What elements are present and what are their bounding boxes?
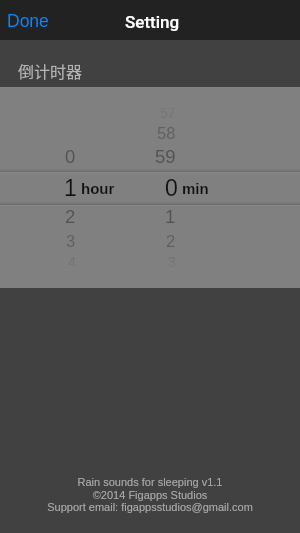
staticText: 0 xyxy=(165,175,178,201)
staticText: 1 xyxy=(165,206,176,227)
staticText: 59 xyxy=(155,146,176,167)
staticText: hour xyxy=(81,180,115,197)
staticText: Setting xyxy=(125,12,180,32)
staticText: 58 xyxy=(157,124,176,142)
staticText: 3 xyxy=(168,254,176,270)
staticText: 2 xyxy=(65,206,76,227)
staticText: ©2014 Figapps Studios xyxy=(0,489,300,501)
staticText: 3 xyxy=(66,232,76,250)
staticText: 4 xyxy=(68,254,76,270)
staticText: 2 xyxy=(166,232,176,250)
staticText: Support email: figappsstudios@gmail.com xyxy=(0,501,300,513)
staticText: 0 xyxy=(65,146,76,167)
staticText: Rain sounds for sleeping v1.1 xyxy=(0,476,300,488)
button[interactable]: Done xyxy=(0,1,63,39)
staticText: 57 xyxy=(160,105,176,121)
staticText: Done xyxy=(7,11,49,31)
button[interactable]: 0 xyxy=(0,87,300,288)
staticText: min xyxy=(182,180,209,197)
staticText: 1 xyxy=(64,175,77,201)
staticText: 倒计时器 xyxy=(18,59,83,82)
